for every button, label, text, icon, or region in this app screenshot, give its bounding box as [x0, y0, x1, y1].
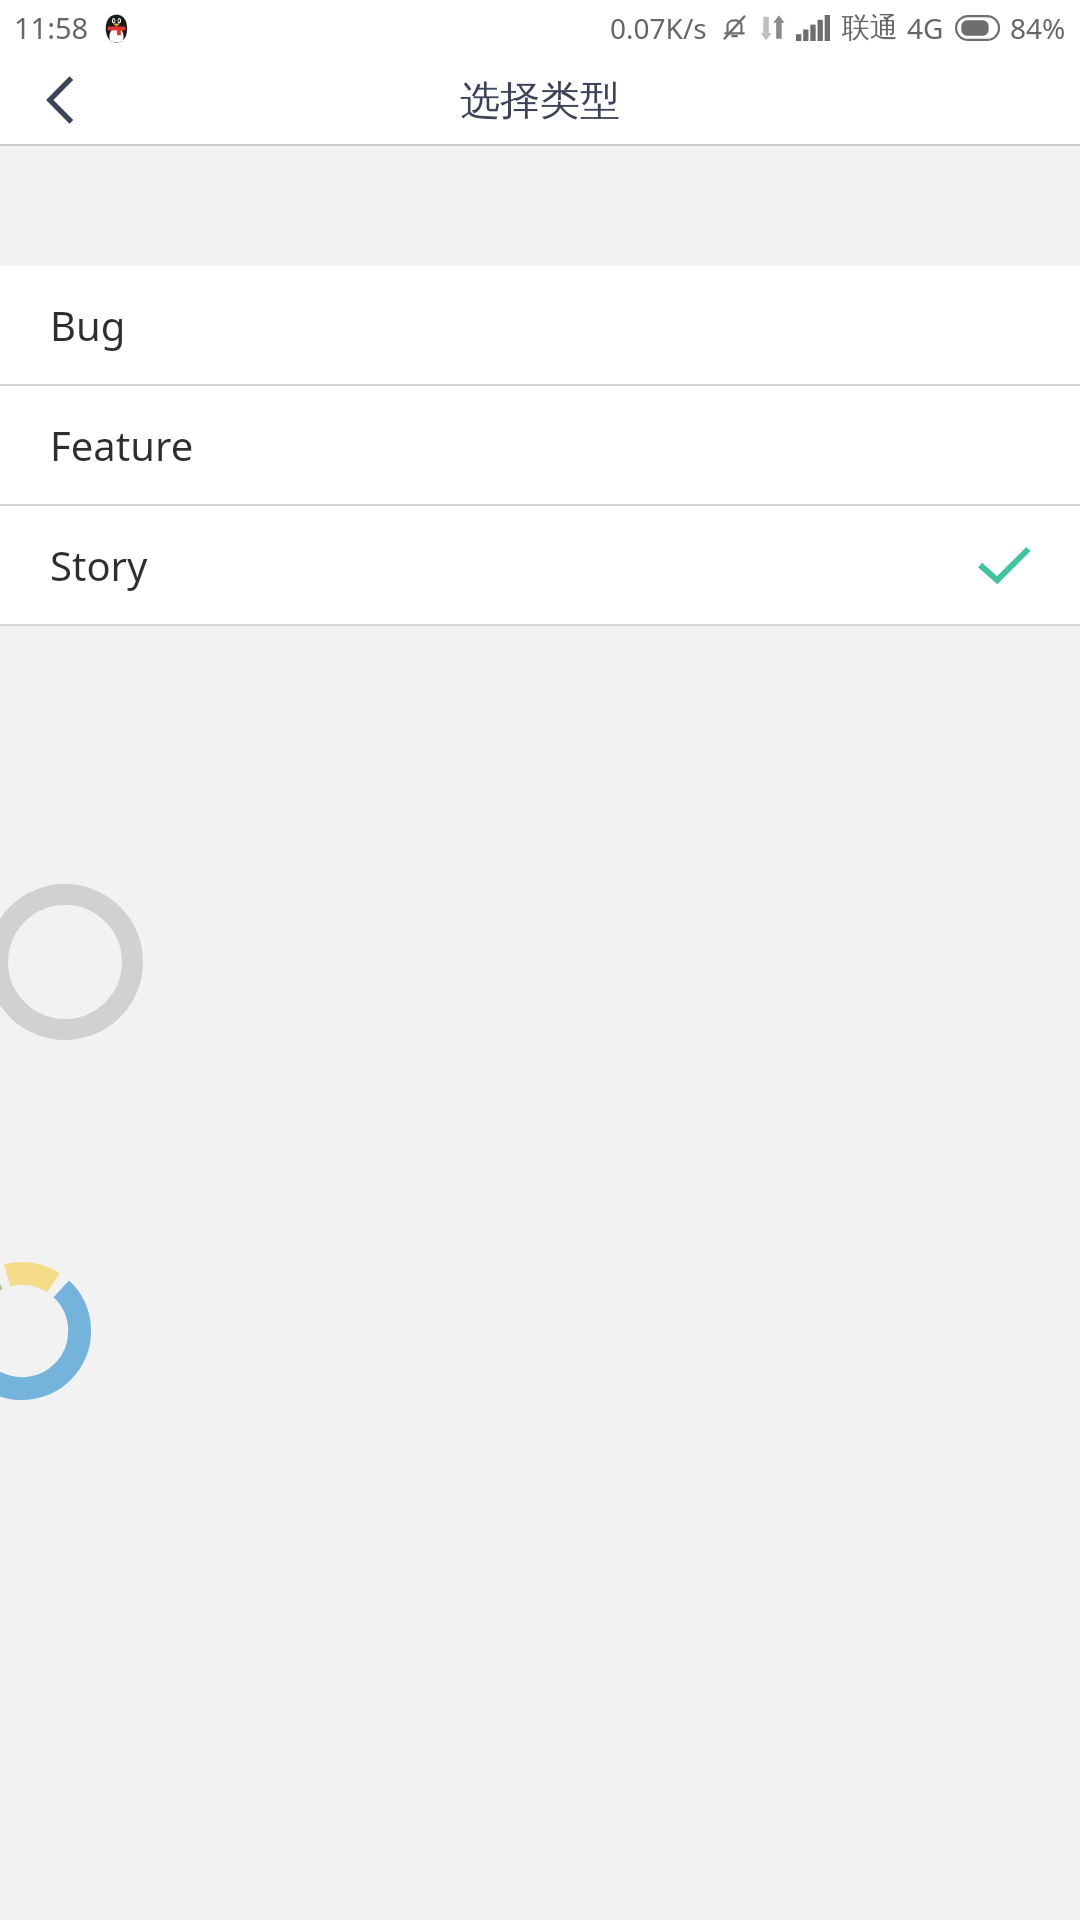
button[interactable]: Back [0, 55, 120, 144]
staticText: 0.07K/s [610, 9, 707, 47]
button[interactable]: Story [0, 506, 1080, 624]
staticText: Feature [50, 418, 194, 472]
staticText: 4G [907, 9, 944, 47]
button[interactable]: Feature [0, 386, 1080, 504]
staticText: 84% [1010, 9, 1066, 47]
staticText: Story [50, 538, 148, 592]
staticText: 11:58 [14, 8, 89, 47]
button[interactable]: Bug [0, 266, 1080, 384]
staticText: Bug [50, 298, 126, 352]
staticText: 选择类型 [0, 75, 1080, 125]
staticText: 联通 [842, 10, 898, 45]
